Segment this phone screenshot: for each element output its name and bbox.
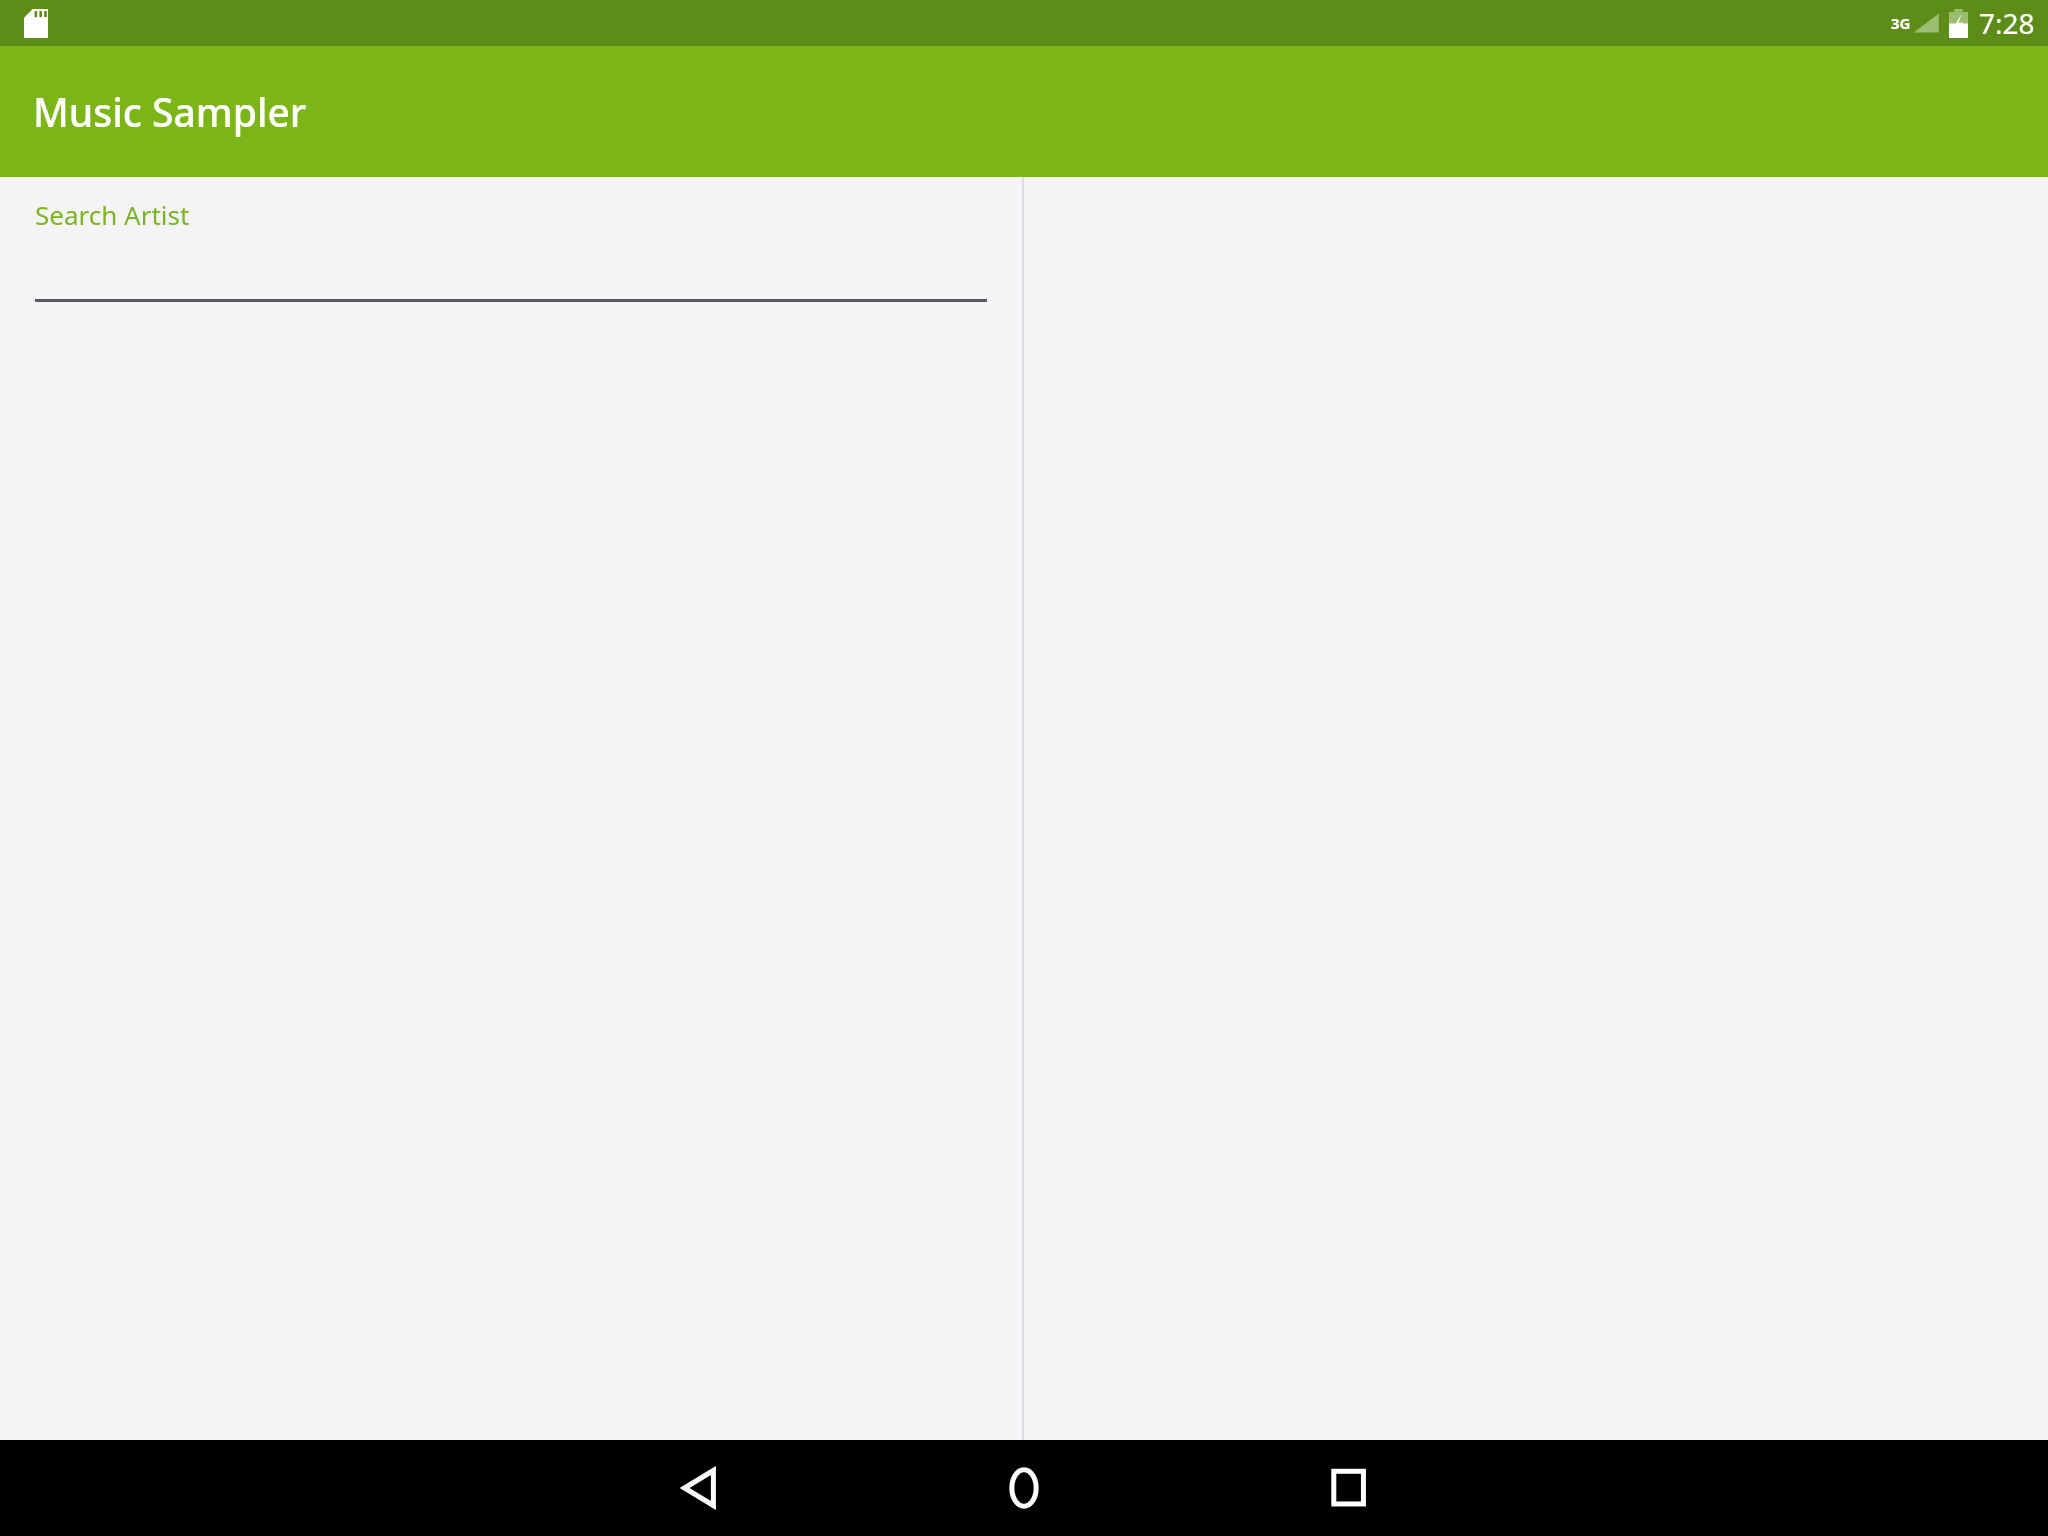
staticText: 3G — [1891, 13, 1911, 33]
button[interactable]: Recent apps — [1313, 1452, 1385, 1524]
staticText: Music Sampler — [33, 85, 307, 138]
button[interactable]: Home — [988, 1452, 1060, 1524]
button[interactable]: Search Artist input — [35, 232, 987, 302]
button[interactable]: Back — [666, 1452, 738, 1524]
staticText: 7:28 — [1979, 4, 2035, 42]
staticText: Search Artist — [35, 197, 190, 232]
